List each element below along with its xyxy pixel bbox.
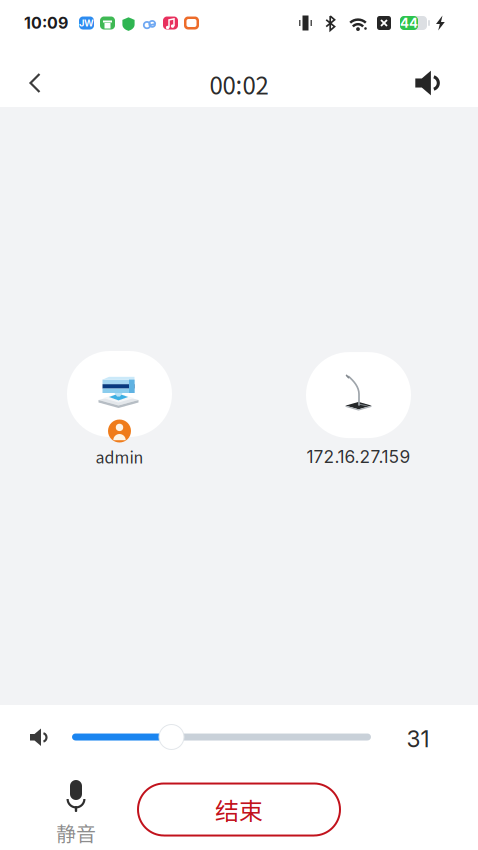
staticText: 10:09 xyxy=(24,13,68,33)
staticText: 44 xyxy=(400,15,418,31)
button[interactable]: 结束 xyxy=(138,783,340,835)
staticText: 静音 xyxy=(56,818,96,847)
staticText: 00:02 xyxy=(209,67,268,101)
staticText: 结束 xyxy=(215,792,263,827)
staticText: 31 xyxy=(406,725,429,753)
button[interactable]: Speaker xyxy=(404,61,450,105)
staticText: JW xyxy=(79,17,94,29)
button[interactable]: 静音 xyxy=(31,769,121,850)
button[interactable]: Back xyxy=(12,61,58,105)
staticText: 172.16.27.159 xyxy=(306,446,410,467)
staticText: admin xyxy=(95,445,143,468)
